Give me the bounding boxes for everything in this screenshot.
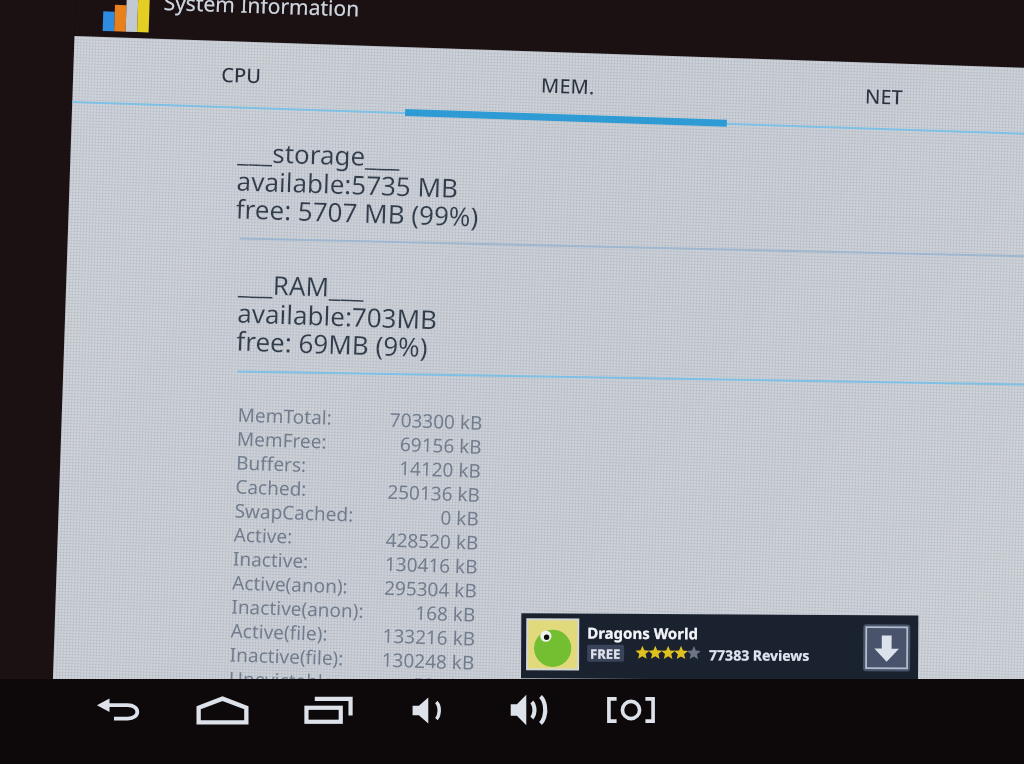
staticText: 536 kB [412,672,474,698]
staticText: MEM. [541,72,595,99]
staticText: 77383 Reviews [709,642,811,668]
staticText: Active: [233,522,293,548]
staticText: Inactive(anon): [231,593,365,622]
staticText: 0 kB [440,504,480,530]
button[interactable]: Home [192,680,252,740]
staticText: Dragons World [587,619,699,646]
staticText: ___RAM___ [238,266,365,305]
staticText: 703300 kB [389,407,483,434]
staticText: Unevictable: [229,665,339,693]
staticText: Active(file): [230,617,328,645]
staticText: Inactive: [233,546,309,572]
staticText: available:5735 MB [236,162,459,205]
staticText: 250136 kB [387,479,481,506]
button[interactable]: MEM. [408,47,732,124]
staticText: MemFree: [237,426,327,453]
staticText: 130248 kB [381,647,475,674]
button[interactable]: Back [88,680,148,740]
staticText: free: 69MB (9%) [236,323,429,364]
staticText: 295304 kB [384,575,478,602]
staticText: MemTotal: [237,402,332,429]
staticText: 133216 kB [382,623,476,650]
button[interactable]: Install [862,623,912,673]
staticText: free: 5707 MB (99%) [235,190,479,234]
staticText: available:703MB [237,295,438,336]
button[interactable]: Screenshot [601,680,661,740]
button[interactable]: CPU [72,36,410,113]
button[interactable]: NET [730,58,1024,136]
staticText: 130416 kB [385,551,478,578]
button[interactable]: Recent apps [298,680,358,740]
staticText: 168 kB [415,600,477,626]
staticText: Inactive(file): [229,641,344,669]
staticText: System Information [163,0,360,23]
staticText: Buffers: [236,450,307,476]
button[interactable]: Volume down [396,680,456,740]
staticText: SwapCached: [234,498,354,526]
staticText: Cached: [235,474,308,500]
staticText: CPU [221,61,262,88]
staticText: NET [864,82,903,110]
button[interactable]: Dragons World [519,602,920,692]
staticText: 428520 kB [385,527,479,554]
button[interactable]: Volume up [498,680,558,740]
staticText: 14120 kB [399,455,482,482]
staticText: Active(anon): [232,570,349,597]
staticText: 69156 kB [400,431,482,458]
staticText: FREE [590,644,622,663]
staticText: ___storage___ [237,133,401,174]
